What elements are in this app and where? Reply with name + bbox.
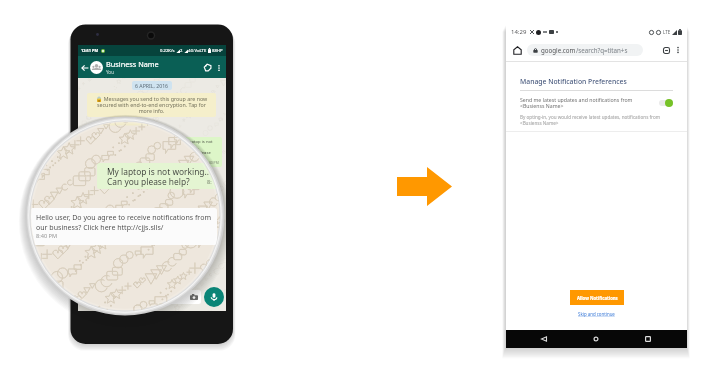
button[interactable]: Allow Notifications — [570, 290, 624, 305]
staticText: Send me latest updates and notifications… — [520, 96, 655, 109]
staticText: LTE — [663, 29, 671, 35]
button[interactable]: Back — [78, 56, 226, 78]
button[interactable]: More options — [673, 45, 683, 55]
staticText: our business? Click here http://cjjs.sll… — [36, 222, 164, 232]
staticText: 12:51 PM — [81, 48, 99, 53]
staticText: Skip and continue — [578, 311, 615, 317]
staticText: By opting-in, you would receive latest u… — [520, 114, 660, 126]
staticText: My laptop is not working.. — [107, 166, 210, 177]
button[interactable]: Record voice message — [204, 287, 224, 307]
staticText: Manage Notification Preferences — [520, 77, 627, 86]
staticText: Hello user, Do you agree to receive noti… — [36, 212, 211, 222]
button[interactable]: Back — [80, 63, 89, 72]
staticText: 1:40 PM — [206, 160, 219, 165]
staticText: Business Name — [106, 59, 159, 69]
staticText: 6 APRIL, 2016 — [135, 82, 169, 89]
button[interactable]: Recent apps — [641, 332, 655, 346]
staticText: 88HP — [212, 48, 223, 54]
button[interactable]: Home — [589, 332, 603, 346]
staticText: 8:40 PM — [36, 232, 58, 240]
button[interactable]: Home — [510, 43, 524, 57]
staticText: 4G VoLTE — [188, 48, 207, 54]
staticText: Allow Notifications — [577, 295, 618, 301]
staticText: google.com — [541, 46, 576, 54]
button[interactable]: Attach — [201, 61, 213, 73]
button[interactable] — [80, 290, 201, 304]
button[interactable]: Tabs — [660, 44, 672, 56]
button[interactable]: Back — [537, 332, 551, 346]
button[interactable]: google.com — [527, 44, 643, 56]
staticText: 2 — [180, 48, 183, 54]
staticText: You — [106, 69, 114, 75]
staticText: 🔒 Messages you send to this group are no… — [90, 95, 213, 115]
staticText: 8: — [207, 178, 212, 185]
staticText: Can you please help? — [107, 176, 190, 187]
staticText: My laptop is not working.. Can you pleas… — [181, 139, 219, 160]
button[interactable]: Send me latest updates and notifications… — [520, 96, 673, 109]
staticText: 14:29 — [511, 28, 527, 36]
staticText: 0.22K/s — [160, 48, 175, 54]
staticText: /search?q=titan+s — [576, 46, 628, 54]
button[interactable]: Skip and continue — [576, 310, 617, 318]
button[interactable]: More options — [213, 62, 224, 73]
